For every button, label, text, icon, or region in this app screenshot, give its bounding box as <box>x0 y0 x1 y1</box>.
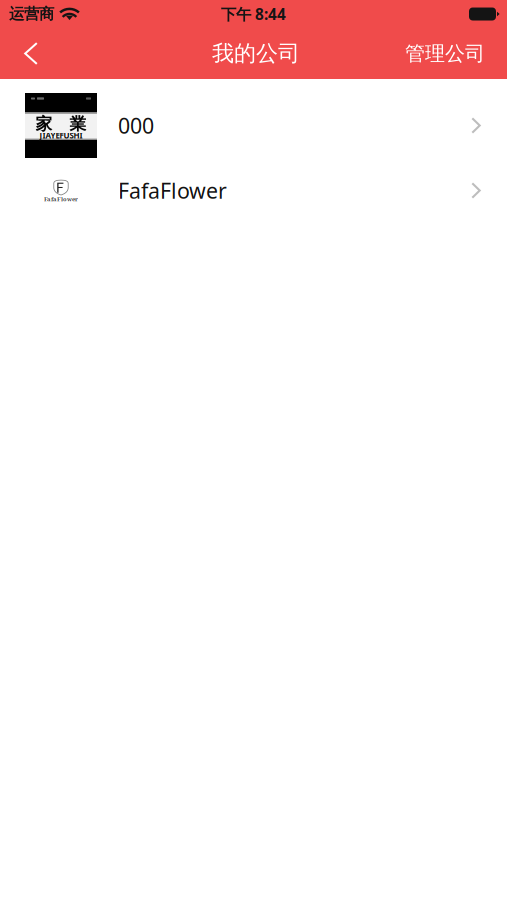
staticText: 运营商 <box>9 4 54 24</box>
staticText: FafaFlower <box>118 176 227 205</box>
staticText: 我的公司 <box>212 40 300 67</box>
staticText: 下午 8:44 <box>221 4 286 24</box>
staticText: FafaFlower <box>44 195 78 203</box>
button[interactable]: 管理公司 <box>393 30 497 76</box>
staticText: JIAYEFUSHI <box>39 130 82 141</box>
button[interactable]: Back <box>9 30 53 76</box>
staticText: Ｆ <box>53 179 68 197</box>
staticText: 管理公司 <box>405 41 485 66</box>
staticText: 000 <box>118 111 154 140</box>
button[interactable]: 家 業 <box>0 79 507 172</box>
staticText: 家 業 <box>35 113 86 134</box>
button[interactable]: Ｆ <box>0 172 507 209</box>
